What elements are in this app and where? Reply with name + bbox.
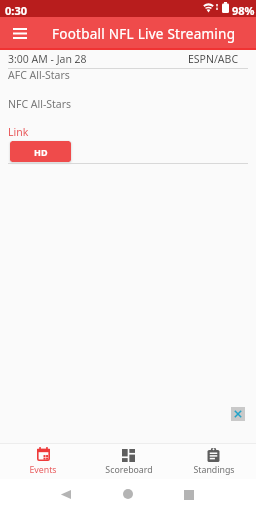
staticText: HD [34,146,48,158]
staticText: 98% [232,3,255,18]
button[interactable]: Scoreboard [86,444,171,479]
staticText: AFC All-Stars [8,68,70,82]
staticText: ESPN/ABC [188,52,239,66]
button[interactable]: Open navigation menu [0,17,40,50]
staticText: Standings [193,464,235,476]
button[interactable]: Close ad [231,407,245,421]
button[interactable]: Home [123,489,133,499]
staticText: NFC All-Stars [8,97,72,111]
staticText: Football NFL Live Streaming [52,25,236,43]
button[interactable]: 3:00 AM - Jan 28 [0,50,256,170]
staticText: Scoreboard [105,464,153,476]
staticText: Events [29,464,57,476]
staticText: 3:00 AM - Jan 28 [8,52,87,66]
staticText: 0:30 [5,3,27,18]
button[interactable]: HD [10,141,71,162]
button[interactable]: Events [0,444,86,479]
button[interactable]: Back [60,489,71,500]
button[interactable]: Standings [171,444,256,479]
staticText: Link [8,125,29,139]
